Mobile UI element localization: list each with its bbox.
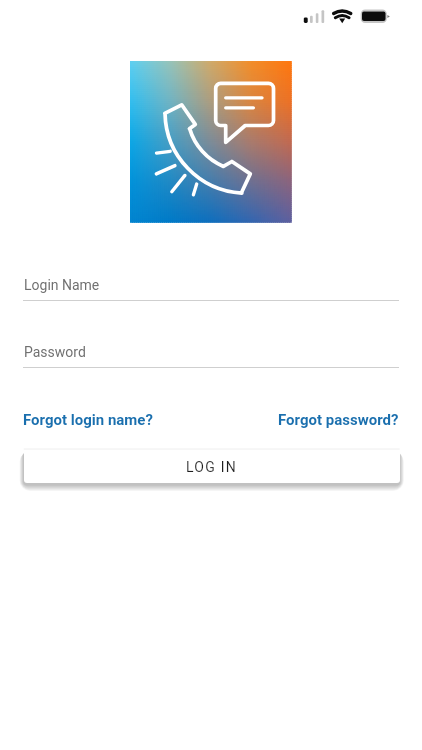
- button[interactable]: Forgot login name?: [23, 411, 153, 429]
- staticText: Login Name: [24, 277, 100, 293]
- button[interactable]: Forgot password?: [278, 411, 399, 429]
- button[interactable]: Password: [23, 344, 399, 369]
- staticText: Forgot password?: [278, 411, 399, 429]
- staticText: Forgot login name?: [23, 411, 153, 429]
- button[interactable]: LOG IN: [24, 450, 400, 483]
- staticText: Password: [24, 344, 86, 360]
- other: App logo: [130, 61, 291, 222]
- staticText: LOG IN: [186, 459, 238, 475]
- button[interactable]: Login Name: [23, 277, 399, 302]
